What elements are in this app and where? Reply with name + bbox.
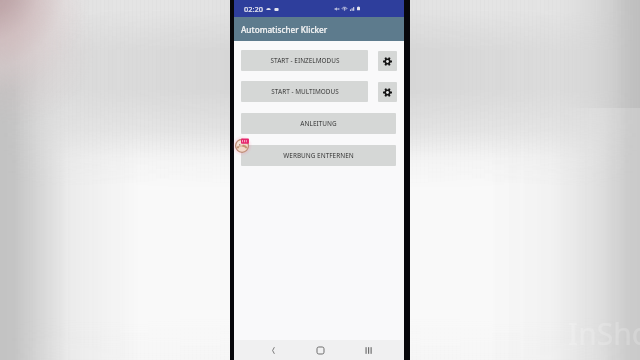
button[interactable]: WERBUNG ENTFERNEN <box>241 145 396 166</box>
staticText: WERBUNG ENTFERNEN <box>283 151 354 160</box>
staticText: START - EINZELMODUS <box>270 56 340 65</box>
staticText: START - MULTIMODUS <box>271 87 339 96</box>
button[interactable]: START - MULTIMODUS <box>241 81 368 102</box>
button[interactable]: Back <box>261 340 285 360</box>
button[interactable]: Settings <box>378 51 397 71</box>
button[interactable]: ANLEITUNG <box>241 113 396 134</box>
staticText: InShot <box>568 313 640 354</box>
staticText: Automatischer Klicker <box>241 24 328 35</box>
staticText: 02:20 <box>244 4 263 14</box>
button[interactable]: Home <box>308 340 332 360</box>
staticText: ANLEITUNG <box>300 119 337 128</box>
button[interactable]: Recent apps <box>356 340 380 360</box>
button[interactable]: Settings <box>378 82 397 102</box>
button[interactable]: Assistant bubble <box>235 138 250 153</box>
button[interactable]: START - EINZELMODUS <box>241 50 368 71</box>
